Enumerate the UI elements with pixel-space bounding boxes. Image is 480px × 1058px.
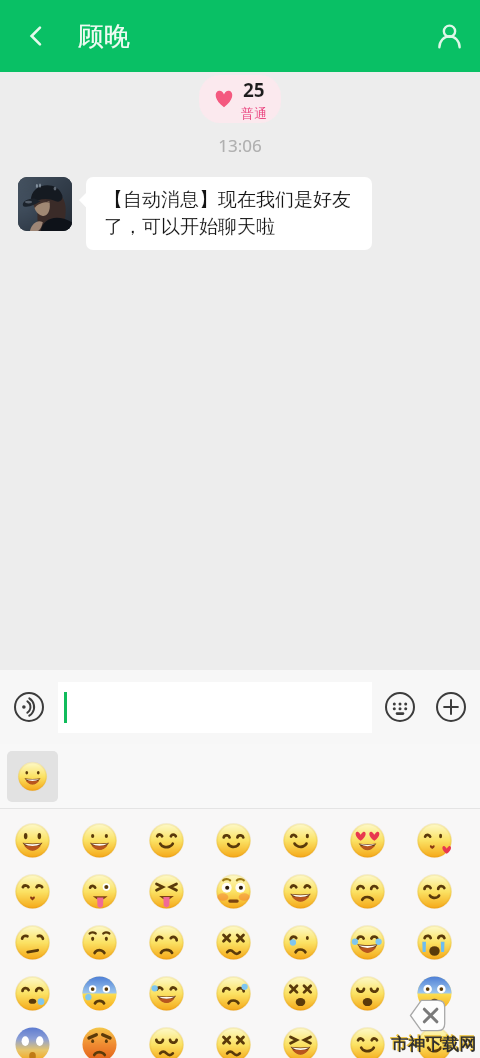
button[interactable]: Emoji <box>343 1020 391 1058</box>
button[interactable]: Emoji <box>8 816 56 864</box>
button[interactable]: Back <box>14 14 58 58</box>
button[interactable]: Emoji <box>8 867 56 915</box>
button[interactable]: Emoji <box>75 816 123 864</box>
button[interactable]: More options <box>429 685 473 729</box>
button[interactable]: Emoji <box>142 1020 190 1058</box>
button[interactable]: Emoji keyboard <box>378 685 422 729</box>
button[interactable]: Emoji <box>75 918 123 966</box>
staticText: 顾晚 <box>78 20 130 53</box>
button[interactable]: Emoji <box>8 1020 56 1058</box>
button[interactable]: Emoji <box>142 969 190 1017</box>
button[interactable]: Emoji <box>142 867 190 915</box>
button[interactable]: Emoji <box>410 816 458 864</box>
button[interactable]: Emoji <box>75 867 123 915</box>
button[interactable]: Emoji <box>343 969 391 1017</box>
button[interactable]: Emoji <box>276 816 324 864</box>
button[interactable]: Emoji <box>276 867 324 915</box>
button[interactable]: Emoji <box>75 1020 123 1058</box>
button[interactable]: Emoji <box>410 867 458 915</box>
staticText: 【自动消息】现在我们是好友了，可以开始聊天啦 <box>104 188 358 239</box>
button[interactable]: Emoji <box>343 816 391 864</box>
button[interactable]: Emoji <box>410 969 458 1017</box>
button[interactable]: Backspace <box>408 999 446 1032</box>
button[interactable]: 【自动消息】现在我们是好友了，可以开始聊天啦 <box>86 177 372 250</box>
button[interactable]: Avatar <box>18 177 72 231</box>
button[interactable]: Emoji <box>209 1020 257 1058</box>
staticText: 25 <box>243 77 265 103</box>
button[interactable]: Profile <box>427 14 471 58</box>
button[interactable]: Emoji <box>343 867 391 915</box>
button[interactable]: Emoji <box>410 1020 458 1058</box>
button[interactable]: Emoji <box>276 918 324 966</box>
button[interactable]: 25 <box>199 75 281 123</box>
button[interactable]: Emoji <box>209 918 257 966</box>
button[interactable] <box>58 682 372 733</box>
button[interactable]: Emoji <box>410 918 458 966</box>
button[interactable]: Emoji <box>209 867 257 915</box>
button[interactable]: Emoji <box>343 918 391 966</box>
staticText: 市神下载网 <box>390 1033 475 1054</box>
staticText: 13:06 <box>0 134 480 157</box>
button[interactable]: Emoji tab <box>7 751 58 802</box>
button[interactable]: Emoji <box>276 1020 324 1058</box>
staticText: 普通 <box>241 105 267 121</box>
button[interactable]: Emoji <box>142 918 190 966</box>
button[interactable]: Emoji <box>8 918 56 966</box>
staticText: 市神下载网 <box>391 1034 476 1055</box>
button[interactable]: Emoji <box>209 969 257 1017</box>
button[interactable]: Emoji <box>142 816 190 864</box>
button[interactable]: Emoji <box>8 969 56 1017</box>
button[interactable]: Emoji <box>75 969 123 1017</box>
button[interactable]: Emoji <box>209 816 257 864</box>
button[interactable]: Voice input <box>7 685 51 729</box>
button[interactable]: Emoji <box>276 969 324 1017</box>
